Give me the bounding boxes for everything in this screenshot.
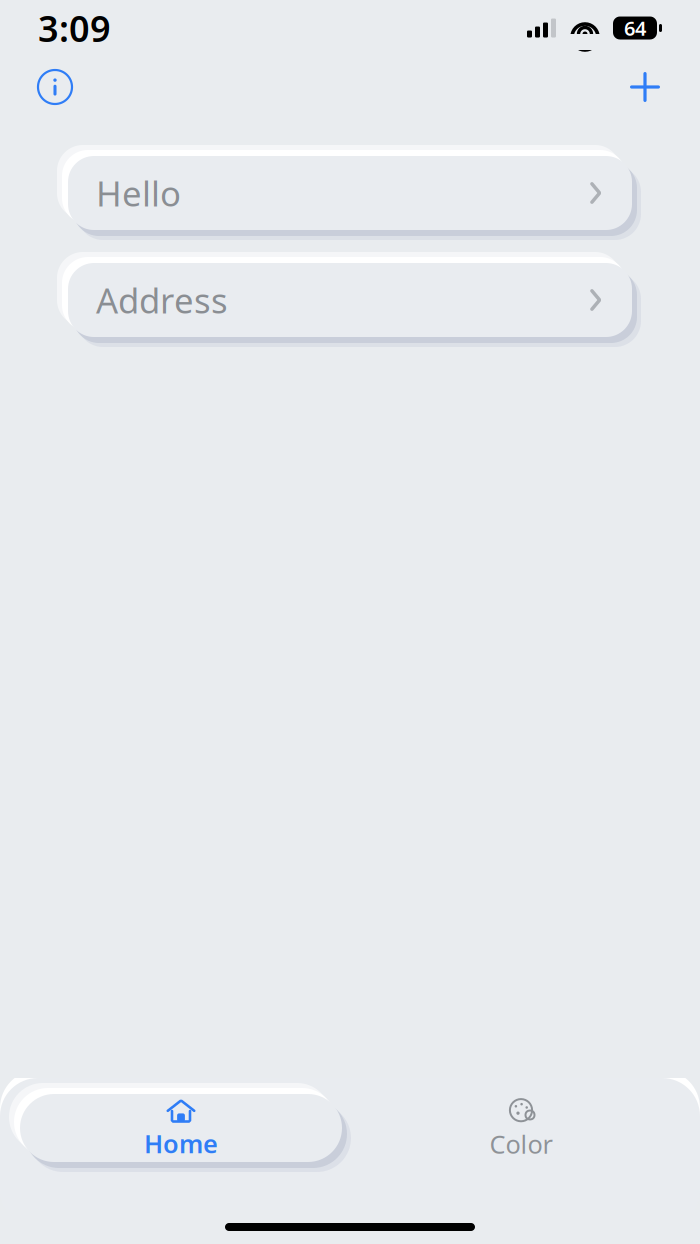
staticText: Hello bbox=[96, 170, 181, 216]
staticText: Home bbox=[144, 1127, 218, 1160]
staticText: 64 bbox=[624, 15, 646, 41]
button[interactable]: Information bbox=[30, 62, 80, 112]
staticText: Color bbox=[489, 1127, 552, 1161]
staticText: 3:09 bbox=[38, 4, 111, 52]
button[interactable]: Add bbox=[620, 62, 670, 112]
button[interactable]: Home bbox=[20, 1094, 342, 1162]
staticText: Address bbox=[96, 277, 228, 323]
button[interactable]: Color bbox=[446, 1094, 596, 1162]
button[interactable]: Hello bbox=[68, 156, 632, 230]
button[interactable]: Address bbox=[68, 263, 632, 337]
